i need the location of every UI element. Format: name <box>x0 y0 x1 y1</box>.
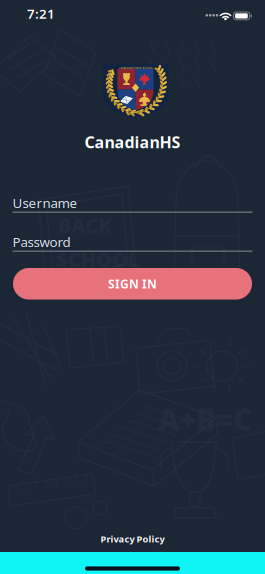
button[interactable]: SIGN IN <box>13 268 252 299</box>
staticText: A+B=C <box>158 400 252 439</box>
staticText: Username <box>12 194 77 212</box>
button[interactable]: Privacy Policy <box>72 528 192 550</box>
staticText: CANADIAN HIGH SCHOOL <box>118 66 152 70</box>
staticText: BACK <box>58 212 112 239</box>
staticText: SCHOOL <box>56 246 140 273</box>
staticText: Password <box>12 233 70 251</box>
staticText: SIGN IN <box>108 276 157 292</box>
staticText: CanadianHS <box>84 131 180 153</box>
staticText: 7:21 <box>27 5 55 22</box>
staticText: Privacy Policy <box>100 533 164 545</box>
